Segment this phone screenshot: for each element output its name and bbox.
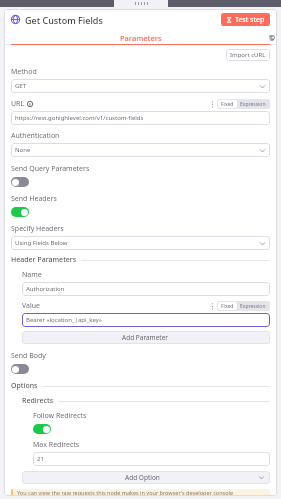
staticText: Authorization: [26, 285, 266, 293]
staticText: None: [15, 146, 259, 154]
staticText: Expression: [240, 101, 266, 108]
staticText: Send Headers: [11, 194, 57, 204]
button[interactable]: None: [11, 143, 270, 157]
button[interactable]: Expression: [237, 100, 269, 108]
button[interactable]: Add Option: [22, 471, 270, 484]
staticText: URL: [11, 99, 25, 109]
button[interactable]: Switch on: [33, 424, 51, 434]
staticText: GET: [15, 82, 259, 90]
staticText: Redirects: [22, 396, 54, 406]
staticText: Header Parameters: [11, 255, 77, 265]
staticText: Send Body: [11, 351, 46, 361]
button[interactable]: Using Fields Below: [11, 236, 270, 250]
button[interactable]: Switch off: [11, 364, 29, 374]
button[interactable]: 21: [33, 452, 270, 466]
staticText: Value: [22, 301, 41, 311]
button[interactable]: Fixed: [218, 100, 237, 108]
staticText: Fixed: [221, 101, 234, 108]
staticText: Follow Redirects: [33, 411, 87, 421]
staticText: Specify Headers: [11, 224, 64, 234]
staticText: Max Redirects: [33, 440, 80, 450]
staticText: 21: [37, 455, 266, 463]
button[interactable]: Expression: [237, 302, 269, 310]
staticText: Get Custom Fields: [25, 14, 103, 26]
staticText: https://rest.gohighlevel.com/v1/custom-f…: [15, 114, 266, 122]
button[interactable]: Import cURL: [226, 49, 270, 61]
staticText: Add Option: [125, 473, 160, 482]
staticText: Bearer «location_|api_key»: [26, 316, 266, 324]
button[interactable]: Add Parameter: [22, 331, 270, 344]
staticText: Using Fields Below: [15, 239, 259, 247]
button[interactable]: GET: [11, 79, 270, 93]
staticText: Parameters: [120, 33, 162, 43]
other: Info: [27, 101, 33, 107]
button[interactable]: Switch on: [11, 207, 29, 217]
staticText: Test step: [235, 15, 265, 25]
button[interactable]: Switch off: [11, 177, 29, 187]
button[interactable]: https://rest.gohighlevel.com/v1/custom-f…: [11, 111, 270, 125]
staticText: Name: [22, 270, 42, 280]
staticText: Options: [11, 381, 38, 391]
button[interactable]: Bearer «location_|api_key»: [22, 313, 270, 327]
staticText: Send Query Parameters: [11, 164, 90, 174]
button[interactable]: Parameters: [11, 30, 270, 45]
staticText: Add Parameter: [122, 333, 169, 342]
staticText: Import cURL: [230, 51, 266, 59]
staticText: Expression: [240, 303, 266, 310]
button[interactable]: Authorization: [22, 282, 270, 296]
other: Field options: [210, 302, 215, 311]
staticText: Authentication: [11, 131, 60, 141]
other: Field options: [210, 100, 215, 109]
button[interactable]: Fixed: [218, 302, 237, 310]
button[interactable]: Test step: [221, 13, 270, 26]
staticText: Method: [11, 67, 37, 77]
staticText: You can view the raw requests this node …: [17, 489, 234, 496]
staticText: Fixed: [221, 303, 234, 310]
